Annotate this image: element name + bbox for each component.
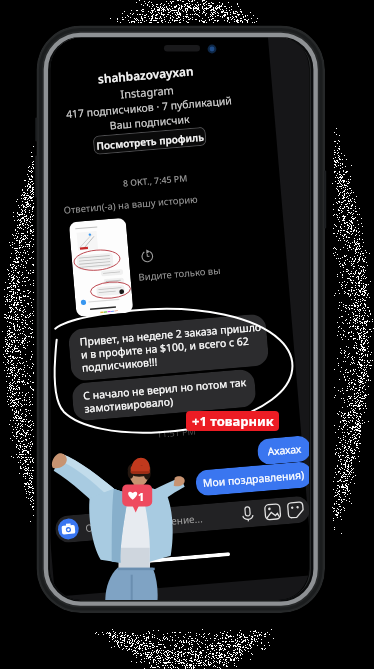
button[interactable]: Привет, на неделе 2 заказа пришло и в пр… <box>68 313 269 382</box>
staticText: Мои поздравления) <box>202 468 305 490</box>
staticText: Видите только вы <box>138 264 222 284</box>
button[interactable]: Мои поздравления) <box>195 461 309 497</box>
staticText: Instagram <box>119 82 175 102</box>
button[interactable]: Ахахах <box>256 435 309 465</box>
button[interactable]: Отправить сообщение... <box>54 495 309 543</box>
button[interactable]: Посмотреть профиль <box>93 127 207 155</box>
button[interactable] <box>69 218 133 317</box>
staticText: 11:51 PM <box>156 424 196 440</box>
staticText: 417 подписчиков · 7 публикаций <box>65 93 233 121</box>
staticText: С начало не верил но потом так замотивир… <box>83 375 248 416</box>
button[interactable]: +1 товарник <box>186 411 279 431</box>
staticText: Посмотреть профиль <box>96 130 205 153</box>
staticText: Привет, на неделе 2 заказа пришло и в пр… <box>79 320 264 375</box>
staticText: Отправить сообщение... <box>85 511 204 535</box>
staticText: 8 ОКТ., 7:45 PM <box>122 172 188 190</box>
staticText: Ваш подписчик <box>109 112 190 132</box>
staticText: Ахахах <box>267 442 302 458</box>
staticText: 1 <box>138 489 145 504</box>
staticText: +1 товарник <box>192 412 274 430</box>
button[interactable]: С начало не верил но потом так замотивир… <box>71 368 257 422</box>
staticText: shahbazovayxan <box>97 62 194 86</box>
other: History <box>140 249 154 263</box>
staticText: Ответил(-а) на вашу историю <box>63 192 199 217</box>
